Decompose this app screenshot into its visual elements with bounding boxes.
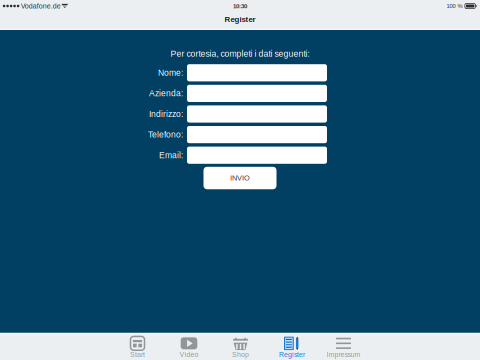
button[interactable]: Shop: [215, 334, 266, 360]
staticText: Impressum: [326, 351, 360, 358]
staticText: 100 %: [447, 3, 463, 9]
staticText: Email:: [159, 150, 183, 160]
staticText: Indirizzo:: [149, 109, 183, 119]
staticText: Vodafone.de: [21, 2, 61, 10]
staticText: Register: [224, 15, 255, 24]
staticText: Register: [279, 351, 305, 358]
staticText: Shop: [232, 351, 249, 358]
button[interactable]: Register: [266, 334, 318, 360]
staticText: INVIO: [230, 174, 250, 182]
staticText: Video: [179, 351, 198, 358]
button[interactable]: INVIO: [203, 167, 276, 189]
button[interactable]: Impressum: [318, 334, 369, 360]
staticText: 10:30: [233, 3, 247, 9]
staticText: Telefono:: [148, 130, 183, 139]
button[interactable]: Video: [163, 334, 215, 360]
staticText: Per cortesia, completi i dati seguenti:: [170, 49, 309, 59]
button[interactable]: Start: [112, 334, 163, 360]
staticText: Azienda:: [149, 89, 183, 98]
staticText: Start: [130, 351, 145, 358]
staticText: Nome:: [158, 68, 183, 77]
